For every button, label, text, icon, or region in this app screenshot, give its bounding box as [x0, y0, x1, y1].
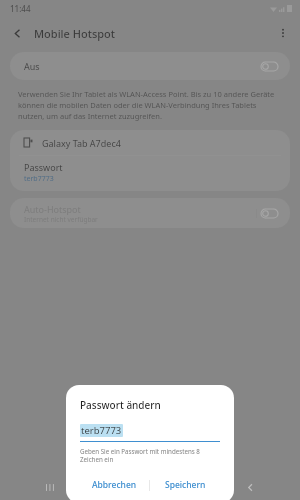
- staticText: Internet nicht verfügbar: [24, 215, 98, 224]
- button[interactable]: Back: [0, 16, 34, 50]
- button[interactable]: Aus: [10, 52, 290, 80]
- staticText: terb7773: [81, 424, 122, 437]
- staticText: Verwenden Sie Ihr Tablet als WLAN-Access…: [18, 89, 282, 121]
- button[interactable]: Galaxy Tab A7dec4: [10, 130, 290, 155]
- button[interactable]: Passwort: [10, 156, 290, 191]
- staticText: terb7773: [24, 174, 54, 184]
- button[interactable]: Abbrechen: [80, 473, 149, 497]
- button[interactable]: Home: [100, 474, 200, 500]
- button[interactable]: More options: [266, 16, 300, 50]
- staticText: Abbrechen: [92, 479, 137, 491]
- staticText: Auto-Hotspot: [24, 203, 81, 215]
- staticText: Speichern: [165, 479, 206, 491]
- staticText: Galaxy Tab A7dec4: [42, 137, 121, 149]
- button[interactable]: Recent apps: [0, 474, 100, 500]
- button[interactable]: Speichern: [150, 473, 220, 497]
- staticText: Passwort: [24, 161, 63, 173]
- staticText: 11:44: [10, 3, 31, 14]
- staticText: Passwort ändern: [80, 398, 161, 412]
- staticText: Mobile Hotspot: [34, 26, 116, 41]
- button[interactable]: Back: [200, 474, 300, 500]
- button[interactable]: terb7773: [80, 424, 220, 442]
- staticText: Aus: [24, 60, 40, 72]
- staticText: Geben Sie ein Passwort mit mindestens 8 …: [80, 447, 220, 463]
